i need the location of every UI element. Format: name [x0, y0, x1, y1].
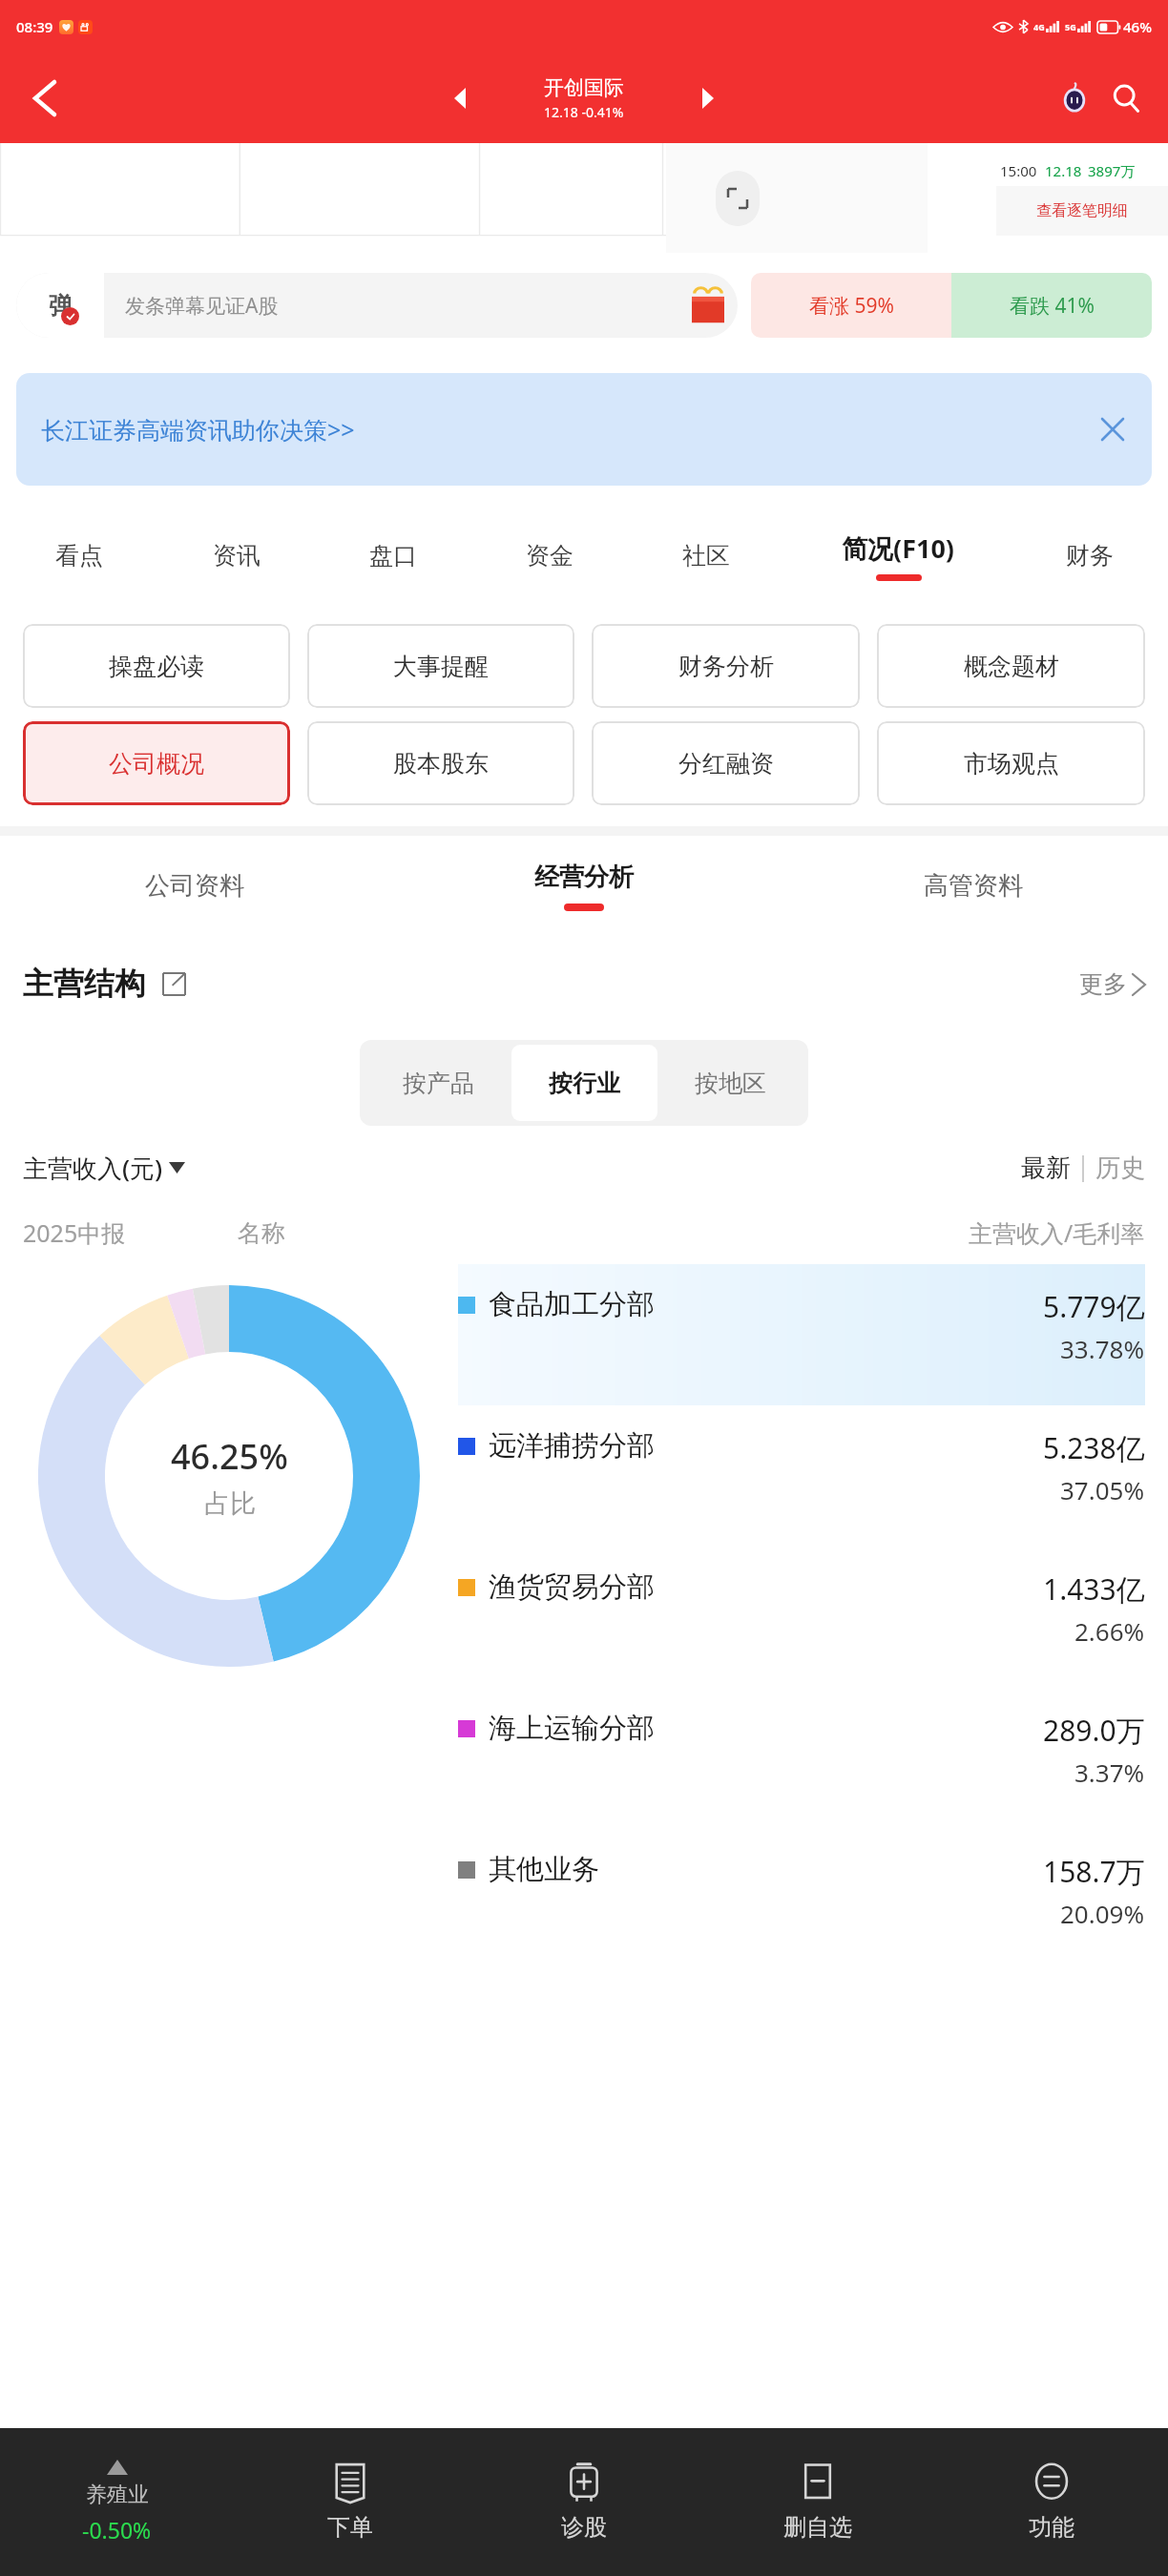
staticText: 简况(F10) — [842, 530, 955, 566]
staticText: 最新 — [1021, 1153, 1071, 1184]
button[interactable]: Back — [21, 74, 69, 122]
staticText: 资金 — [526, 541, 574, 571]
staticText: 46% — [1123, 17, 1152, 36]
button[interactable]: 历史 — [1095, 1153, 1145, 1184]
button[interactable]: 最新 — [1021, 1153, 1071, 1184]
button[interactable]: 概念题材 — [877, 624, 1145, 708]
button[interactable]: 财务 — [1012, 501, 1168, 611]
button[interactable]: 诊股 — [467, 2428, 700, 2576]
staticText: 主营收入(元) — [23, 1151, 163, 1185]
staticText: 看跌 41% — [1010, 292, 1095, 320]
staticText: 弹 — [49, 291, 73, 321]
staticText: 市场观点 — [964, 749, 1059, 779]
button[interactable]: 高管资料 — [779, 836, 1168, 936]
button[interactable]: 功能 — [934, 2428, 1168, 2576]
button[interactable]: 远洋捕捞分部 — [458, 1405, 1145, 1547]
staticText: 2025中报 — [23, 1216, 238, 1249]
staticText: 按地区 — [695, 1069, 766, 1098]
button[interactable]: Close ad — [1087, 404, 1138, 455]
staticText: 公司概况 — [109, 749, 204, 779]
staticText: 资讯 — [213, 541, 261, 571]
button[interactable]: 食品加工分部 — [458, 1264, 1145, 1405]
button[interactable]: 下单 — [233, 2428, 467, 2576]
staticText: 主营收入/毛利率 — [969, 1216, 1145, 1249]
staticText: 长江证券高端资讯助你决策>> — [41, 413, 355, 446]
staticText: 高管资料 — [924, 870, 1023, 902]
button[interactable]: 弹 — [16, 273, 738, 338]
button[interactable]: 看点 — [0, 501, 157, 611]
staticText: 12.18 -0.41% — [544, 103, 624, 121]
button[interactable]: 分红融资 — [592, 721, 860, 805]
staticText: 08:39 — [16, 17, 53, 36]
staticText: -0.50% — [82, 2515, 152, 2545]
button[interactable]: 社区 — [628, 501, 784, 611]
button[interactable]: 资讯 — [157, 501, 315, 611]
staticText: 主营结构 — [23, 965, 145, 1003]
button[interactable]: 资金 — [471, 501, 628, 611]
button[interactable]: 长江证券高端资讯助你决策>> — [16, 373, 1152, 486]
staticText: 经营分析 — [534, 862, 634, 893]
staticText: 20.09% — [1060, 1897, 1145, 1930]
button[interactable]: Open detail — [155, 965, 193, 1003]
staticText: 看点 — [55, 541, 103, 571]
staticText: 15:00 — [1000, 161, 1037, 180]
staticText: 5.238亿 — [1043, 1428, 1145, 1467]
staticText: 发条弹幕见证A股 — [125, 292, 279, 320]
staticText: 37.05% — [1060, 1473, 1145, 1506]
staticText: 4G — [1033, 21, 1045, 32]
staticText: 公司资料 — [145, 870, 244, 902]
staticText: 概念题材 — [964, 652, 1059, 681]
staticText: 远洋捕捞分部 — [489, 1428, 655, 1464]
button[interactable]: 渔货贸易分部 — [458, 1547, 1145, 1688]
button[interactable]: Next stock — [689, 79, 727, 117]
staticText: 12.18 — [1045, 161, 1082, 180]
button[interactable]: 经营分析 — [389, 836, 779, 936]
staticText: 诊股 — [561, 2513, 607, 2542]
staticText: 财务分析 — [678, 652, 774, 681]
staticText: 渔货贸易分部 — [489, 1569, 655, 1605]
button[interactable]: 养殖业 — [0, 2428, 233, 2576]
staticText: 其他业务 — [489, 1852, 599, 1887]
staticText: 海上运输分部 — [489, 1711, 655, 1746]
button[interactable]: 更多 — [1079, 969, 1145, 999]
button[interactable]: 其他业务 — [458, 1829, 1145, 1970]
button[interactable]: 看涨 59% — [751, 273, 951, 338]
button[interactable]: 简况(F10) — [784, 501, 1012, 611]
button[interactable]: 公司概况 — [23, 721, 290, 805]
staticText: 289.0万 — [1043, 1711, 1145, 1750]
button[interactable]: 股本股东 — [307, 721, 574, 805]
staticText: 46.25% — [171, 1433, 288, 1480]
button[interactable]: 按地区 — [657, 1045, 803, 1121]
staticText: 操盘必读 — [109, 652, 204, 681]
button[interactable]: 按行业 — [511, 1045, 657, 1121]
staticText: 开创国际 — [544, 75, 624, 100]
button[interactable]: 按产品 — [365, 1045, 511, 1121]
button[interactable]: 大事提醒 — [307, 624, 574, 708]
staticText: 158.7万 — [1043, 1852, 1145, 1891]
button[interactable]: 看跌 41% — [951, 273, 1152, 338]
button[interactable]: Previous stock — [441, 79, 479, 117]
button[interactable]: 主营收入(元) — [23, 1151, 185, 1185]
staticText: 养殖业 — [86, 2482, 149, 2508]
staticText: 按产品 — [403, 1069, 474, 1098]
staticText: 3897万 — [1088, 161, 1136, 180]
button[interactable]: 操盘必读 — [23, 624, 290, 708]
staticText: 占比 — [204, 1487, 256, 1520]
staticText: 下单 — [327, 2513, 373, 2542]
staticText: 删自选 — [783, 2513, 852, 2542]
button[interactable]: 市场观点 — [877, 721, 1145, 805]
button[interactable]: 海上运输分部 — [458, 1688, 1145, 1829]
staticText: 财务 — [1066, 541, 1114, 571]
staticText: 分红融资 — [678, 749, 774, 779]
button[interactable]: 删自选 — [700, 2428, 934, 2576]
button[interactable]: 财务分析 — [592, 624, 860, 708]
button[interactable]: 盘口 — [315, 501, 471, 611]
staticText: 1.433亿 — [1043, 1569, 1145, 1609]
button[interactable]: Fullscreen — [716, 171, 760, 226]
staticText: 5.779亿 — [1043, 1287, 1145, 1326]
button[interactable]: 查看逐笔明细 — [996, 186, 1168, 236]
button[interactable]: AI assistant — [1052, 75, 1097, 121]
button[interactable]: 公司资料 — [0, 836, 389, 936]
button[interactable]: Search — [1103, 75, 1149, 121]
staticText: 3.37% — [1074, 1755, 1145, 1789]
